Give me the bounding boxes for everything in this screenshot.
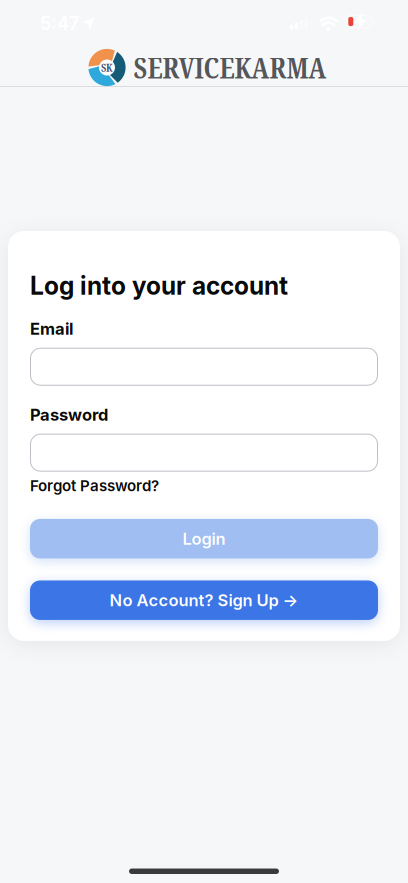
staticText: No Account? Sign Up →	[109, 590, 298, 610]
staticText: SK	[101, 60, 113, 75]
button[interactable]: Password	[30, 434, 378, 472]
staticText: Email	[30, 319, 73, 339]
staticText: Password	[30, 405, 108, 425]
staticText: Log into your account	[30, 271, 288, 301]
button[interactable]: Login	[30, 519, 378, 558]
button[interactable]: No Account? Sign Up →	[30, 580, 378, 620]
staticText: 5:47	[40, 13, 79, 34]
button[interactable]: Forgot Password?	[30, 477, 159, 495]
staticText: SERVICEKARMA	[133, 48, 326, 87]
button[interactable]: Email	[30, 348, 378, 386]
staticText: Login	[182, 529, 225, 549]
staticText: Forgot Password?	[30, 477, 159, 495]
